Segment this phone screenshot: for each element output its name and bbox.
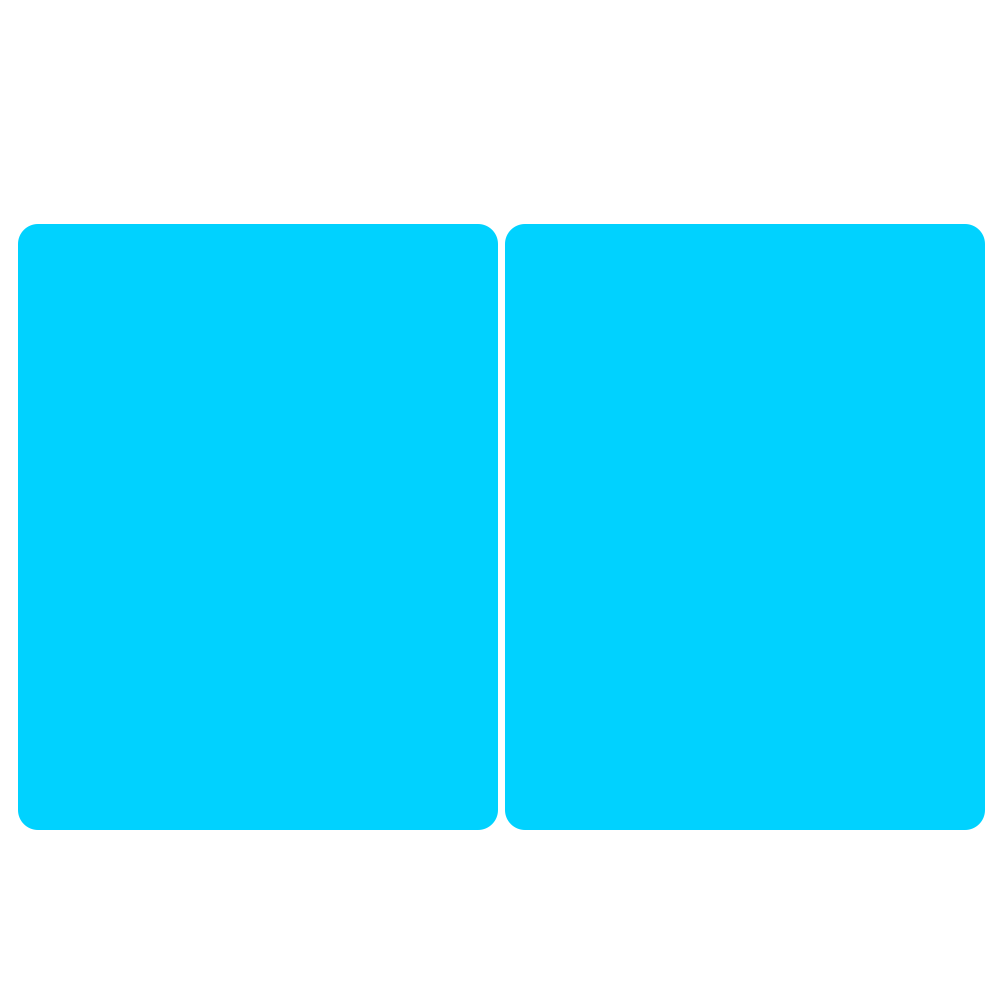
button[interactable]: Open left card [18,224,498,830]
button[interactable]: Open right card [505,224,985,830]
